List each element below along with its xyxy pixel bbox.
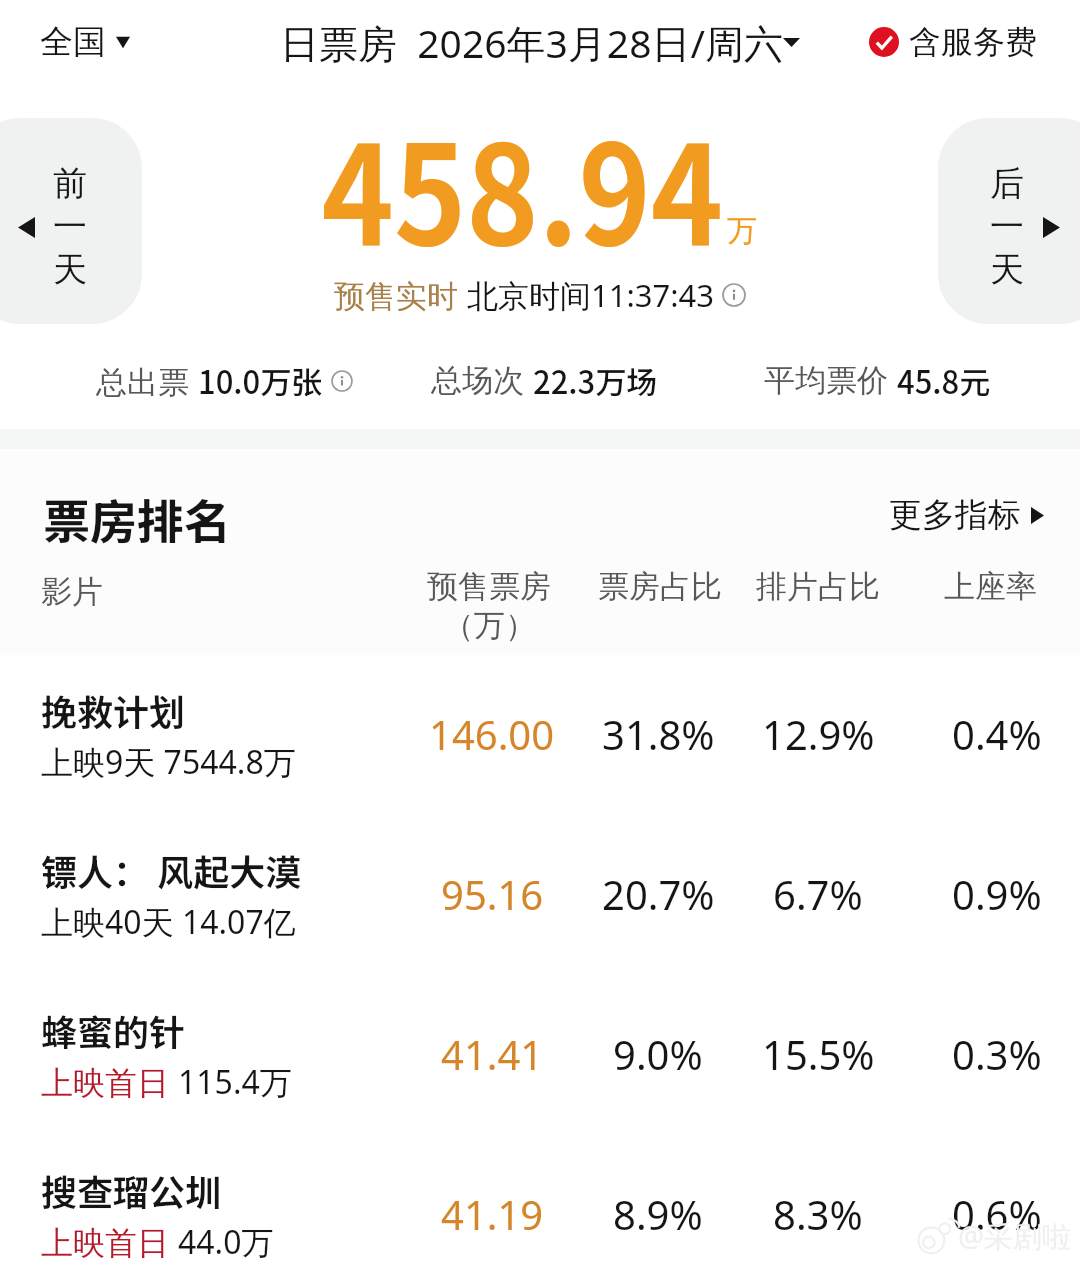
staticText: 22.3万场 — [533, 358, 658, 403]
button[interactable]: 挽救计划 — [0, 662, 1080, 822]
staticText: 日票房 2026年3月28日/周六 — [280, 16, 783, 69]
staticText: 票房占比 — [598, 567, 722, 606]
staticText: 票房排名 — [43, 484, 231, 546]
button[interactable] — [938, 118, 1080, 324]
staticText: 全国 — [40, 21, 106, 63]
staticText: 12.9% — [762, 707, 875, 761]
button[interactable]: 镖人： 风起大漠 — [0, 822, 1080, 982]
staticText: 8.3% — [773, 1187, 863, 1241]
staticText: 天 — [990, 248, 1024, 291]
staticText: 上映9天 7544.8万 — [41, 740, 296, 784]
staticText: 0.6% — [952, 1187, 1042, 1241]
staticText: 含服务费 — [909, 22, 1037, 62]
staticText: 6.7% — [773, 867, 863, 921]
other: Previous day — [18, 217, 35, 238]
button[interactable]: 日票房 2026年3月28日/周六 — [280, 16, 800, 69]
staticText: 146.00 — [429, 707, 555, 761]
staticText: 后 — [990, 162, 1024, 205]
staticText: （万） — [443, 606, 536, 645]
staticText: @采剧啦 — [958, 1216, 1072, 1256]
staticText: 上映首日 — [41, 1060, 178, 1104]
staticText: 9.0% — [613, 1027, 703, 1081]
staticText: 一 — [53, 205, 87, 248]
staticText: 10.0万张 — [198, 358, 323, 403]
staticText: 挽救计划 — [41, 684, 186, 736]
staticText: 蜂蜜的针 — [41, 1004, 186, 1056]
staticText: 总场次 — [431, 358, 533, 400]
staticText: 预售票房 — [427, 567, 551, 606]
staticText: 更多指标 — [889, 494, 1021, 536]
staticText: 458.94 — [322, 86, 723, 284]
staticText: 上映40天 14.07亿 — [41, 900, 296, 944]
staticText: 0.3% — [952, 1027, 1042, 1081]
other: Next day — [1043, 217, 1060, 238]
staticText: 0.4% — [952, 707, 1042, 761]
staticText: 前 — [53, 162, 87, 205]
staticText: 45.8元 — [897, 358, 991, 403]
staticText: 20.7% — [602, 867, 715, 921]
staticText: 上映首日 — [41, 1220, 178, 1264]
button[interactable]: 蜂蜜的针 — [0, 982, 1080, 1142]
staticText: 15.5% — [762, 1027, 875, 1081]
staticText: 预售实时 — [334, 274, 467, 316]
staticText: 115.4万 — [178, 1060, 292, 1104]
staticText: 搜查瑠公圳 — [41, 1164, 222, 1216]
staticText: 总出票 — [96, 360, 198, 402]
staticText: 北京时间11:37:43 — [467, 274, 715, 316]
button[interactable] — [0, 118, 142, 324]
staticText: 上座率 — [944, 567, 1037, 606]
staticText: 41.41 — [441, 1027, 544, 1081]
button[interactable]: 含服务费 — [869, 22, 1037, 62]
staticText: 95.16 — [441, 867, 544, 921]
staticText: 41.19 — [441, 1187, 544, 1241]
staticText: 万 — [727, 212, 757, 250]
staticText: 一 — [990, 205, 1024, 248]
staticText: 平均票价 — [764, 358, 897, 400]
button[interactable]: 更多指标 — [889, 494, 1044, 536]
staticText: 天 — [53, 248, 87, 291]
staticText: 31.8% — [602, 707, 715, 761]
staticText: 0.9% — [952, 867, 1042, 921]
staticText: 44.0万 — [178, 1220, 274, 1264]
button[interactable]: 搜查瑠公圳 — [0, 1142, 1080, 1264]
staticText: 影片 — [41, 572, 103, 611]
staticText: 排片占比 — [756, 567, 880, 606]
staticText: 镖人： 风起大漠 — [41, 844, 302, 896]
button[interactable]: 全国 — [40, 21, 130, 63]
staticText: 8.9% — [613, 1187, 703, 1241]
